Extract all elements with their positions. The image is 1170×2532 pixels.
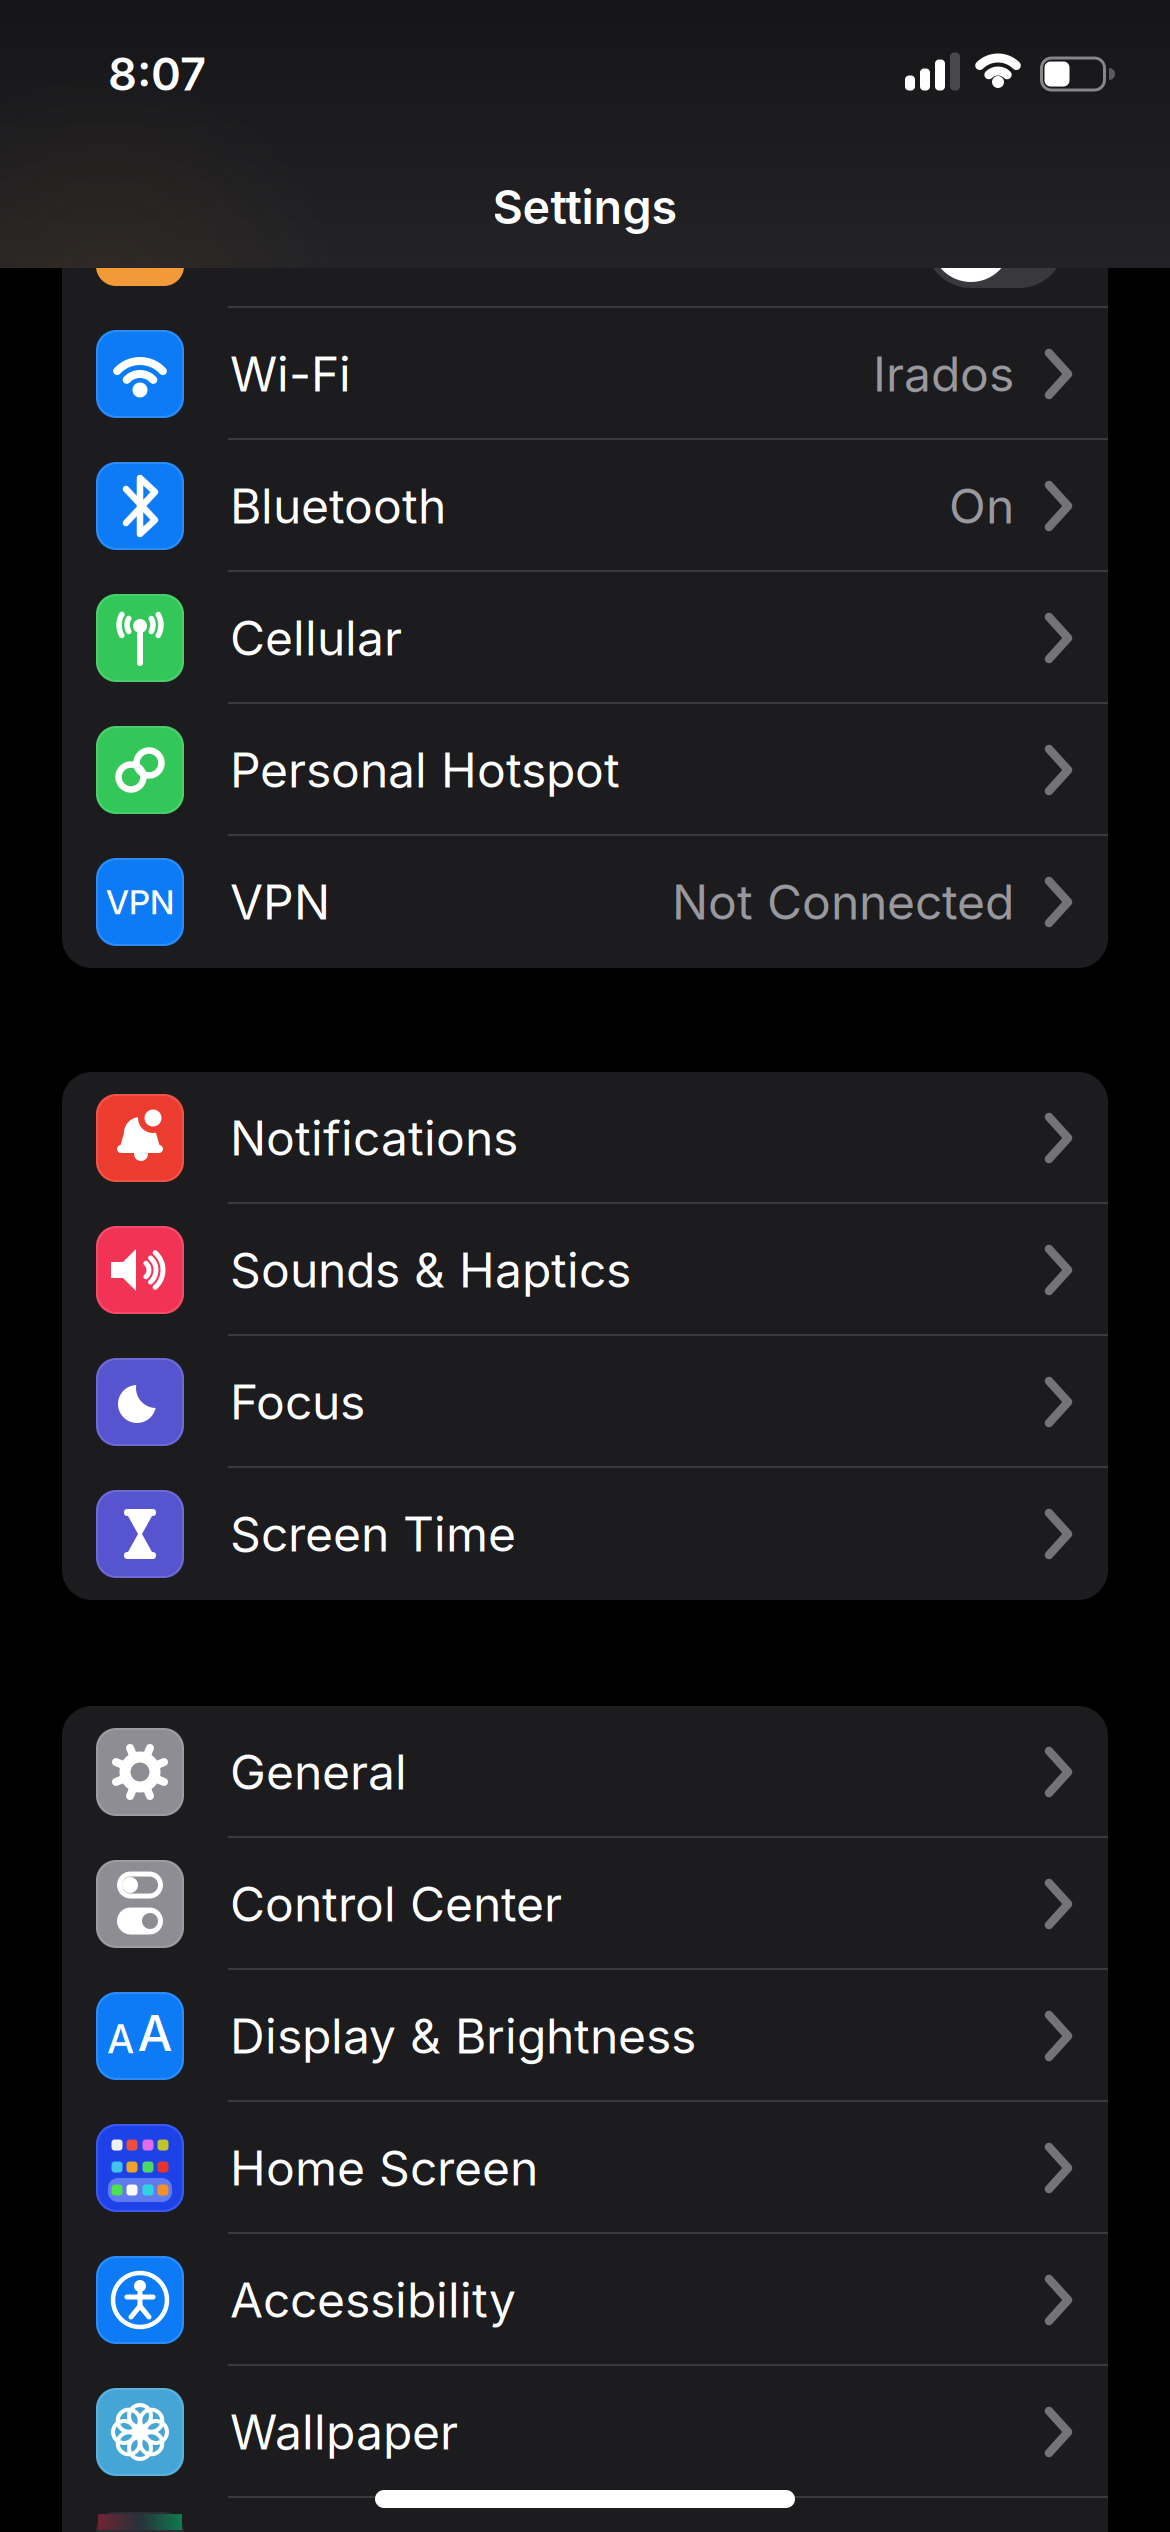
staticText: Accessibility bbox=[230, 2272, 516, 2328]
staticText: General bbox=[230, 1744, 407, 1800]
button[interactable]: Sounds & Haptics bbox=[62, 1204, 1108, 1336]
staticText: 8:07 bbox=[108, 47, 206, 101]
button[interactable]: Focus bbox=[62, 1336, 1108, 1468]
staticText: A bbox=[137, 2004, 172, 2062]
staticText: Personal Hotspot bbox=[230, 742, 620, 798]
button[interactable]: Airplane Mode bbox=[62, 176, 1108, 308]
button[interactable]: Screen Time bbox=[62, 1468, 1108, 1600]
staticText: Home Screen bbox=[230, 2140, 538, 2196]
button[interactable]: General bbox=[62, 1706, 1108, 1838]
staticText: Settings bbox=[492, 179, 677, 235]
staticText: A bbox=[107, 2016, 133, 2062]
staticText: VPN bbox=[230, 874, 330, 930]
staticText: Wi-Fi bbox=[230, 346, 351, 402]
staticText: Focus bbox=[230, 1374, 365, 1430]
staticText: Not Connected bbox=[672, 874, 1014, 930]
button[interactable]: Accessibility bbox=[62, 2234, 1108, 2366]
button[interactable]: Wi-Fi bbox=[62, 308, 1108, 440]
staticText: Irados bbox=[873, 346, 1014, 402]
button[interactable]: Notifications bbox=[62, 1072, 1108, 1204]
staticText: Notifications bbox=[230, 1110, 518, 1166]
button[interactable]: Bluetooth bbox=[62, 440, 1108, 572]
staticText: VPN bbox=[106, 882, 174, 922]
staticText: Screen Time bbox=[230, 1506, 516, 1562]
button[interactable]: VPN bbox=[62, 836, 1108, 968]
button[interactable]: Cellular bbox=[62, 572, 1108, 704]
button[interactable]: A bbox=[62, 1970, 1108, 2102]
staticText: Display & Brightness bbox=[230, 2008, 696, 2064]
staticText: Sounds & Haptics bbox=[230, 1242, 631, 1298]
staticText: Wallpaper bbox=[230, 2404, 458, 2460]
button[interactable]: Siri & Search bbox=[62, 2490, 1108, 2532]
button[interactable]: Personal Hotspot bbox=[62, 704, 1108, 836]
staticText: Cellular bbox=[230, 610, 402, 666]
staticText: On bbox=[949, 478, 1014, 534]
staticText: Control Center bbox=[230, 1876, 562, 1932]
button[interactable]: Wallpaper bbox=[62, 2366, 1108, 2498]
button[interactable]: Control Center bbox=[62, 1838, 1108, 1970]
button[interactable]: Home Screen bbox=[62, 2102, 1108, 2234]
staticText: Bluetooth bbox=[230, 478, 446, 534]
